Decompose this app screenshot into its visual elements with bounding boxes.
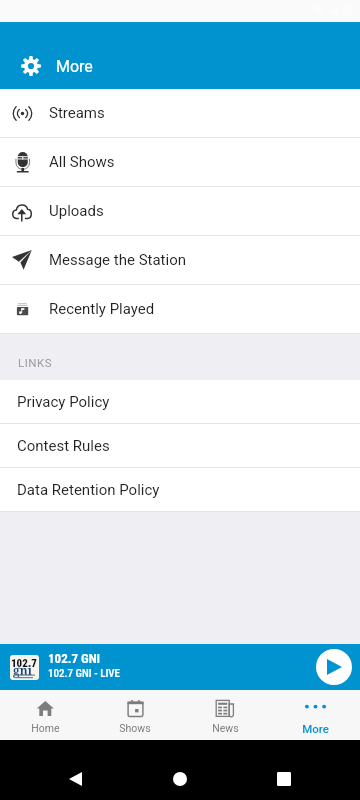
staticText: More <box>56 57 93 76</box>
staticText: LINKS <box>18 356 53 369</box>
staticText: All Shows <box>49 153 115 171</box>
button[interactable]: Back <box>69 772 82 786</box>
staticText: Contest Rules <box>17 437 110 455</box>
button[interactable]: News <box>180 690 270 740</box>
button[interactable]: Message the Station <box>0 236 360 285</box>
button[interactable]: Recently Played <box>0 285 360 334</box>
button[interactable]: More <box>270 690 360 740</box>
button[interactable]: Home <box>173 772 187 786</box>
staticText: Shows <box>119 722 151 734</box>
staticText: 102.7 <box>11 657 37 670</box>
button[interactable]: Recents <box>277 772 291 786</box>
staticText: Streams <box>49 104 105 122</box>
button[interactable]: Streams <box>0 89 360 138</box>
button[interactable]: Uploads <box>0 187 360 236</box>
button[interactable]: Privacy Policy <box>0 380 360 424</box>
staticText: Home <box>31 722 60 734</box>
staticText: 102.7 GNI <box>48 651 101 666</box>
button[interactable]: Home <box>0 690 90 740</box>
staticText: Message the Station <box>49 251 186 269</box>
button[interactable]: Shows <box>90 690 180 740</box>
staticText: Recently Played <box>49 300 155 318</box>
button[interactable]: Play <box>316 649 352 685</box>
staticText: Uploads <box>49 202 104 220</box>
staticText: Data Retention Policy <box>17 481 160 499</box>
button[interactable]: 102.7 <box>0 644 360 690</box>
button[interactable]: Data Retention Policy <box>0 468 360 512</box>
button[interactable]: All Shows <box>0 138 360 187</box>
staticText: gni <box>13 662 32 678</box>
button[interactable]: Contest Rules <box>0 424 360 468</box>
staticText: News <box>212 722 239 734</box>
staticText: More <box>302 722 329 735</box>
staticText: 102.7 GNI - LIVE <box>48 667 120 680</box>
staticText: Privacy Policy <box>17 393 110 411</box>
other: Settings <box>21 56 41 76</box>
